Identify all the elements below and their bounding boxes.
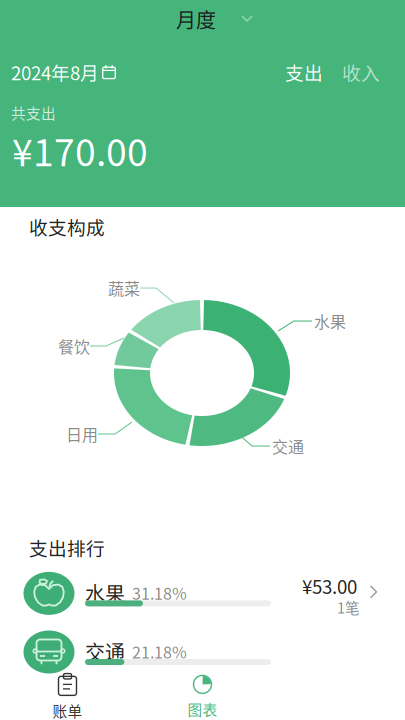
button[interactable]: 支出: [281, 59, 327, 85]
staticText: 水果: [85, 578, 125, 607]
staticText: 2024年8月: [11, 58, 99, 85]
staticText: 交通: [85, 637, 125, 666]
staticText: 交通: [272, 434, 304, 458]
staticText: 支出排行: [29, 534, 105, 561]
staticText: ¥53.00: [302, 572, 357, 599]
button[interactable]: 2024年8月: [11, 59, 116, 85]
button[interactable]: 交通: [0, 629, 405, 675]
staticText: 餐饮: [58, 334, 90, 358]
staticText: ¥170.00: [12, 123, 148, 177]
button[interactable]: 水果: [0, 571, 405, 617]
staticText: 收入: [342, 58, 380, 85]
button[interactable]: 账单: [0, 673, 135, 720]
staticText: 31.18%: [132, 581, 187, 604]
staticText: 月度: [176, 4, 216, 33]
staticText: 1笔: [337, 596, 360, 618]
staticText: 水果: [314, 309, 346, 333]
staticText: 日用: [66, 422, 98, 446]
staticText: 账单: [52, 700, 82, 720]
staticText: 21.18%: [132, 640, 187, 663]
button[interactable]: 月度: [168, 2, 260, 36]
button[interactable]: 收入: [338, 59, 384, 85]
staticText: 共支出: [11, 102, 56, 123]
staticText: 收支构成: [29, 213, 105, 240]
staticText: 支出: [285, 58, 323, 85]
staticText: 图表: [187, 698, 217, 720]
button[interactable]: 图表: [135, 674, 270, 720]
staticText: 蔬菜: [108, 276, 140, 300]
